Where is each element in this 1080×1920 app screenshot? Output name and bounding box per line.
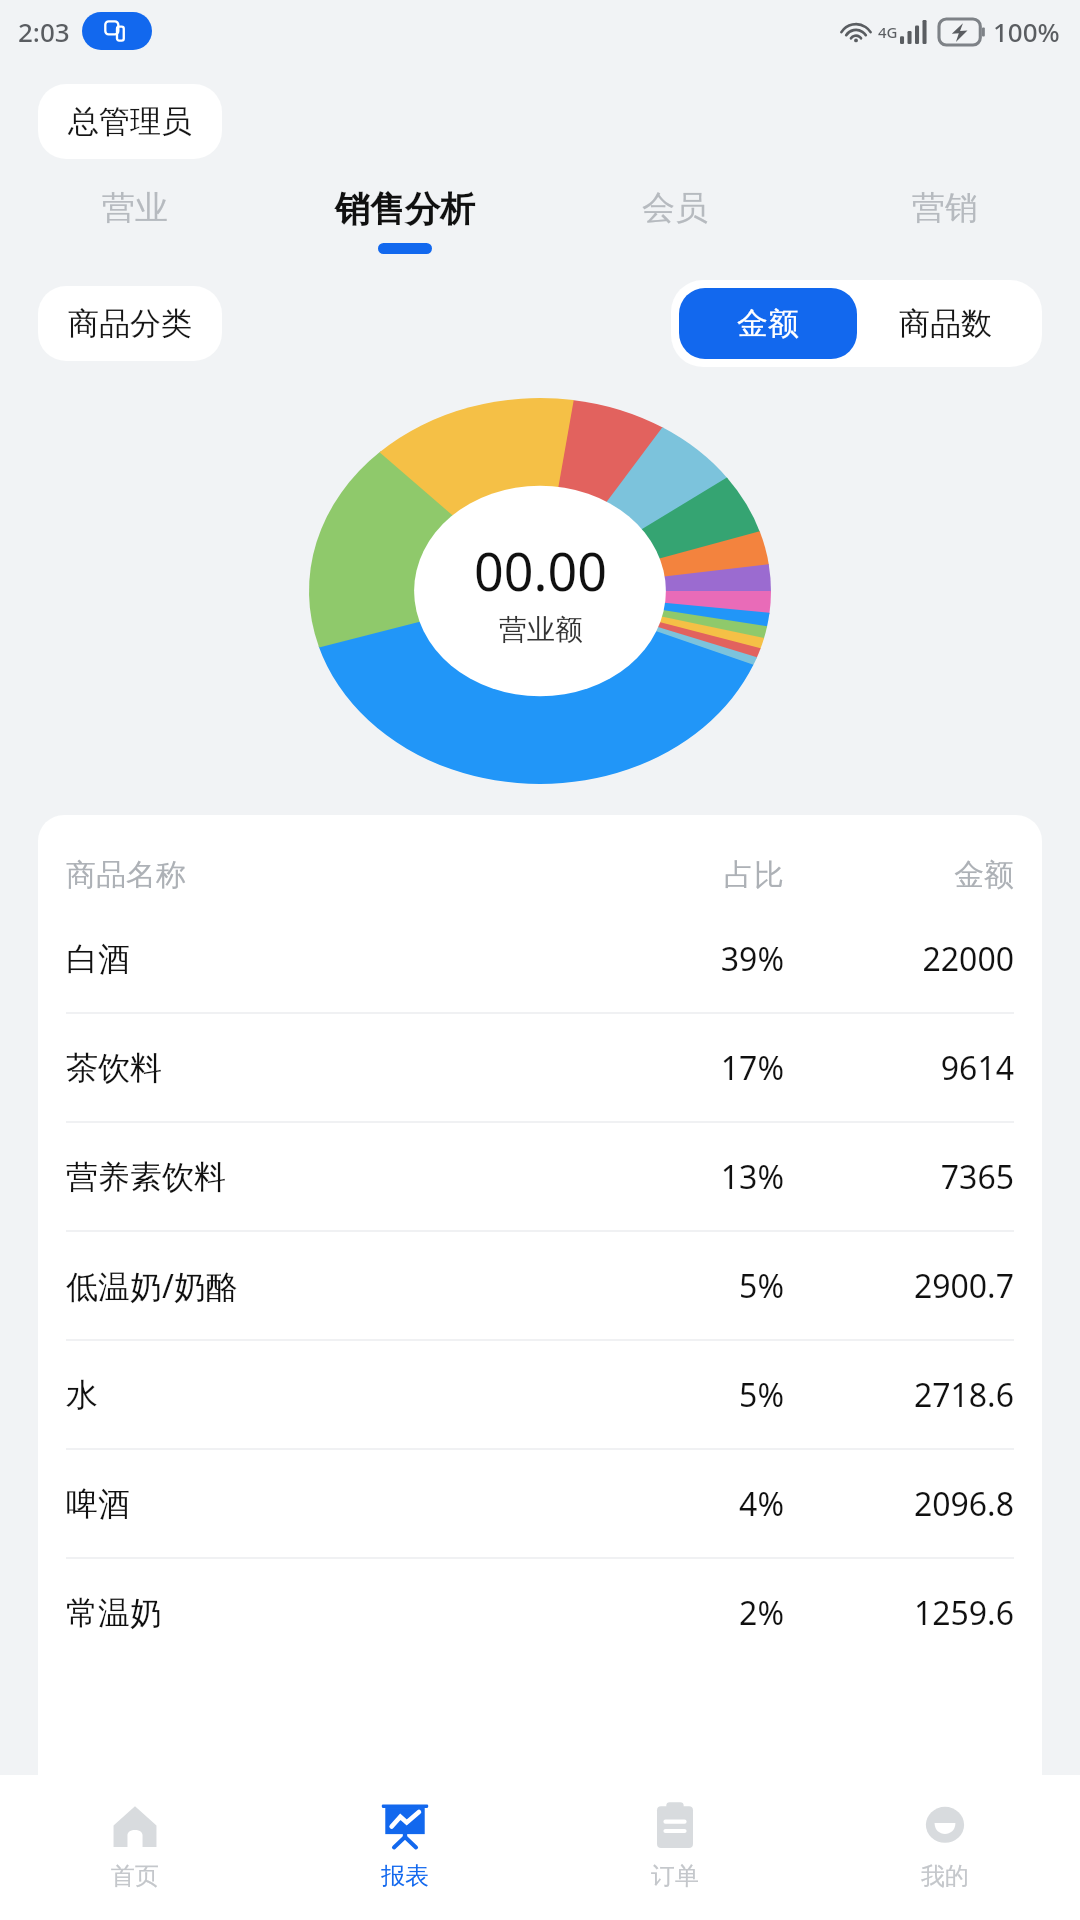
staticText: 低温奶/奶酪: [66, 1264, 574, 1308]
button[interactable]: 啤酒: [66, 1450, 1014, 1557]
staticText: 金额: [784, 856, 1014, 894]
staticText: 报表: [381, 1861, 429, 1891]
staticText: 2900.7: [784, 1264, 1014, 1308]
staticText: 39%: [574, 937, 784, 981]
staticText: 5%: [574, 1373, 784, 1417]
button[interactable]: 首页: [0, 1775, 270, 1920]
staticText: 00.00: [474, 535, 607, 606]
staticText: 订单: [651, 1861, 699, 1891]
button[interactable]: 常温奶: [66, 1559, 1014, 1666]
button[interactable]: 商品数: [857, 288, 1034, 359]
staticText: 茶饮料: [66, 1048, 574, 1088]
button[interactable]: 低温奶/奶酪: [66, 1232, 1014, 1339]
button[interactable]: 营业: [0, 187, 270, 252]
staticText: 我的: [921, 1861, 969, 1891]
staticText: 占比: [574, 856, 784, 894]
staticText: 4%: [574, 1482, 784, 1526]
staticText: 2%: [574, 1591, 784, 1635]
staticText: 首页: [111, 1861, 159, 1891]
button[interactable]: 报表: [270, 1775, 540, 1920]
button[interactable]: 水: [66, 1341, 1014, 1448]
button[interactable]: 销售分析: [270, 187, 540, 254]
staticText: 营业额: [499, 612, 583, 647]
staticText: 5%: [574, 1264, 784, 1308]
staticText: 营销: [912, 187, 978, 229]
button[interactable]: 营销: [810, 187, 1080, 252]
staticText: 会员: [642, 187, 708, 229]
button[interactable]: 茶饮料: [66, 1014, 1014, 1121]
staticText: 金额: [737, 304, 799, 343]
button[interactable]: 白酒: [66, 905, 1014, 1012]
other: 订单: [646, 1797, 704, 1855]
button[interactable]: 我的: [810, 1775, 1080, 1920]
other: 我的: [916, 1797, 974, 1855]
staticText: 2:03: [18, 14, 70, 49]
staticText: 17%: [574, 1046, 784, 1090]
other: 首页: [106, 1797, 164, 1855]
staticText: 4G: [878, 22, 898, 42]
staticText: 13%: [574, 1155, 784, 1199]
staticText: 2718.6: [784, 1373, 1014, 1417]
staticText: 营养素饮料: [66, 1157, 574, 1197]
staticText: 9614: [784, 1046, 1014, 1090]
staticText: 白酒: [66, 939, 574, 979]
other: 报表: [376, 1797, 434, 1855]
button[interactable]: 总管理员: [38, 84, 222, 159]
staticText: 销售分析: [335, 187, 475, 231]
staticText: 2096.8: [784, 1482, 1014, 1526]
staticText: 100%: [993, 14, 1060, 49]
staticText: 商品数: [899, 304, 992, 343]
staticText: 啤酒: [66, 1484, 574, 1524]
button[interactable]: 金额: [679, 288, 857, 359]
staticText: 营业: [102, 187, 168, 229]
staticText: 7365: [784, 1155, 1014, 1199]
button[interactable]: 会员: [540, 187, 810, 252]
button[interactable]: 营养素饮料: [66, 1123, 1014, 1230]
staticText: 22000: [784, 937, 1014, 981]
button[interactable]: 商品分类: [38, 286, 222, 361]
staticText: 总管理员: [68, 102, 192, 141]
staticText: 商品分类: [68, 304, 192, 343]
button[interactable]: 订单: [540, 1775, 810, 1920]
staticText: 水: [66, 1375, 574, 1415]
staticText: 常温奶: [66, 1593, 574, 1633]
staticText: 商品名称: [66, 856, 574, 894]
staticText: 1259.6: [784, 1591, 1014, 1635]
